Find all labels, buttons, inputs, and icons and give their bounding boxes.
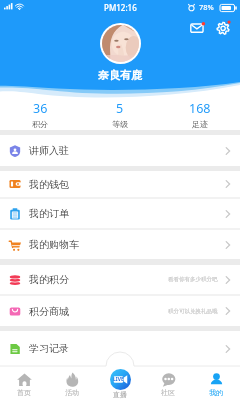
staticText: 36 [33, 100, 48, 117]
staticText: LIVE [113, 376, 124, 383]
staticText: 奈良有鹿 [98, 68, 142, 82]
button[interactable]: 168 [160, 100, 240, 129]
staticText: 学习记录 [29, 342, 69, 355]
button[interactable]: 我的积分 [0, 265, 240, 294]
button[interactable]: 我的 [192, 362, 240, 400]
staticText: 我的 [209, 388, 223, 397]
button[interactable]: Messages [189, 19, 207, 37]
button[interactable]: 36 [0, 100, 80, 129]
button[interactable]: 首页 [0, 362, 48, 400]
staticText: 5 [116, 100, 124, 117]
button[interactable]: 学习记录 [0, 331, 240, 366]
staticText: PM12:16 [104, 2, 137, 13]
staticText: 直播 [113, 390, 127, 399]
staticText: 社区 [161, 388, 175, 397]
staticText: 78% [199, 2, 214, 12]
staticText: 我的订单 [29, 207, 69, 220]
staticText: 等级 [112, 119, 128, 129]
staticText: 足迹 [192, 119, 208, 129]
button[interactable]: 我的购物车 [0, 230, 240, 259]
staticText: 168 [189, 100, 211, 117]
staticText: 看看你有多少积分吧 [168, 276, 218, 283]
button[interactable]: 5 [80, 100, 160, 129]
button[interactable]: 我的订单 [0, 199, 240, 228]
button[interactable]: 讲师入驻 [0, 135, 240, 166]
staticText: 积分 [32, 119, 48, 129]
button[interactable]: 积分商城 [0, 296, 240, 326]
button[interactable]: LIVE [96, 362, 144, 400]
staticText: 首页 [17, 388, 31, 397]
staticText: 我的积分 [29, 273, 69, 286]
staticText: 活动 [65, 388, 79, 397]
staticText: 积分商城 [29, 305, 69, 318]
staticText: 讲师入驻 [29, 144, 69, 157]
staticText: 积分可以兑换礼品哦 [168, 308, 218, 315]
button[interactable]: Settings [215, 19, 233, 37]
button[interactable]: 社区 [144, 362, 192, 400]
staticText: 我的钱包 [29, 178, 69, 191]
staticText: 我的购物车 [29, 238, 79, 251]
button[interactable]: 活动 [48, 362, 96, 400]
button[interactable]: 我的钱包 [0, 171, 240, 197]
button[interactable]: Profile photo [102, 25, 139, 62]
